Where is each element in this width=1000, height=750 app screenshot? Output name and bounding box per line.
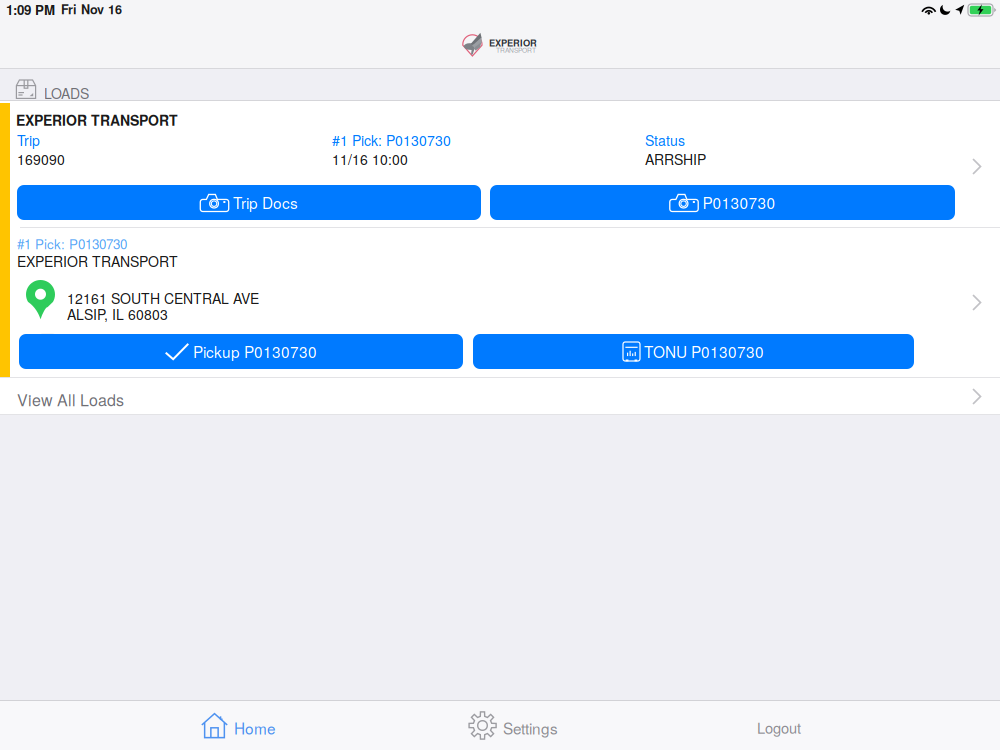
staticText: EXPERIOR TRANSPORT <box>16 110 178 130</box>
staticText: TRANSPORT <box>496 45 536 54</box>
staticText: P0130730 <box>702 191 775 213</box>
staticText: Trip Docs <box>233 191 298 213</box>
staticText: 12161 SOUTH CENTRAL AVE <box>67 288 259 308</box>
button[interactable]: Logout <box>666 701 1000 750</box>
button[interactable]: P0130730 <box>490 185 955 220</box>
staticText: Pickup P0130730 <box>193 340 317 362</box>
staticText: #1 Pick: P0130730 <box>332 130 451 150</box>
staticText: ARRSHIP <box>645 149 706 169</box>
staticText: #1 Pick: P0130730 <box>17 234 127 253</box>
button[interactable]: Home <box>0 701 333 750</box>
staticText: Trip <box>17 130 40 150</box>
staticText: Home <box>234 717 276 739</box>
button[interactable]: Trip Docs <box>17 185 481 220</box>
staticText: LOADS <box>44 83 89 103</box>
staticText: EXPERIOR <box>489 36 537 49</box>
button[interactable]: Settings <box>333 701 666 750</box>
staticText: EXPERIOR TRANSPORT <box>17 251 178 271</box>
staticText: 1:09 PM <box>6 0 55 19</box>
staticText: ALSIP, IL 60803 <box>67 304 168 324</box>
staticText: View All Loads <box>17 388 124 411</box>
staticText: 169090 <box>17 149 65 169</box>
staticText: Settings <box>503 717 558 739</box>
staticText: Status <box>645 130 685 150</box>
button[interactable]: View All Loads <box>0 378 1000 414</box>
staticText: TONU P0130730 <box>644 340 764 362</box>
staticText: Fri Nov 16 <box>61 0 122 18</box>
staticText: 11/16 10:00 <box>332 149 408 169</box>
staticText: Logout <box>757 717 801 738</box>
button[interactable]: TONU P0130730 <box>473 334 914 369</box>
button[interactable]: Pickup P0130730 <box>19 334 463 369</box>
